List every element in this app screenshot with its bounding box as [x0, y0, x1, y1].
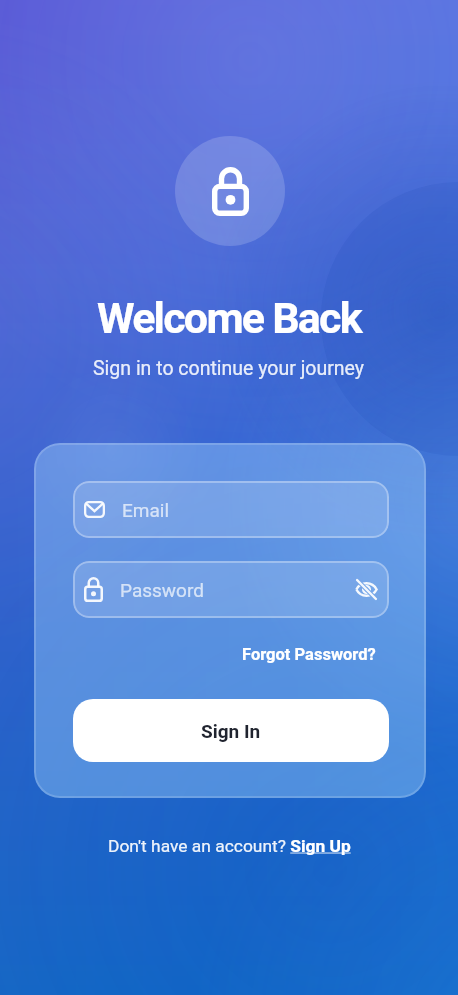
- staticText: Forgot Password?: [242, 645, 376, 664]
- staticText: Sign in to continue your journey: [93, 357, 365, 380]
- button[interactable]: Email: [73, 481, 389, 538]
- staticText: Email: [122, 499, 170, 521]
- button[interactable]: Password: [73, 561, 389, 618]
- button[interactable]: Sign In: [73, 699, 389, 762]
- button[interactable]: Forgot Password?: [242, 645, 376, 664]
- staticText: Password: [120, 579, 204, 601]
- staticText: Don't have an account? Sign Up: [108, 836, 351, 856]
- button[interactable]: Don't have an account? Sign Up: [104, 832, 355, 860]
- staticText: Welcome Back: [97, 293, 361, 343]
- staticText: Sign In: [201, 720, 261, 742]
- button[interactable]: Show password: [355, 577, 378, 602]
